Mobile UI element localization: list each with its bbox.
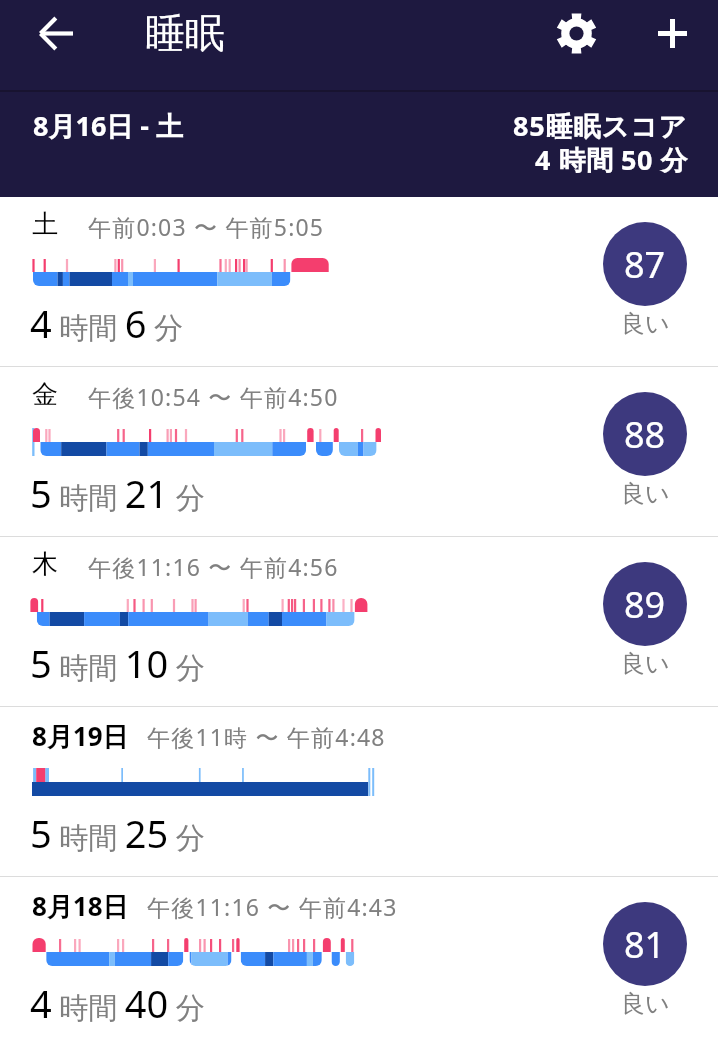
button[interactable]: Back: [24, 1, 88, 65]
staticText: 午後11:16 〜 午前4:43: [147, 891, 398, 922]
staticText: 5 時間 21 分: [30, 467, 205, 519]
staticText: 良い: [621, 479, 670, 509]
staticText: 87: [624, 240, 666, 289]
staticText: 午後11:16 〜 午前4:56: [88, 551, 339, 582]
staticText: 良い: [621, 309, 670, 339]
staticText: 午前0:03 〜 午前5:05: [88, 211, 325, 242]
staticText: 8月18日: [32, 888, 129, 924]
staticText: 4 時間 6 分: [30, 297, 184, 349]
staticText: 良い: [621, 989, 670, 1019]
staticText: 睡眠: [145, 8, 225, 58]
button[interactable]: 土: [0, 197, 718, 366]
staticText: 木: [32, 548, 58, 581]
staticText: 土: [32, 208, 58, 241]
staticText: 89: [624, 580, 666, 629]
staticText: 4 時間 50 分: [535, 141, 688, 178]
button[interactable]: Add: [640, 1, 704, 65]
staticText: 午後10:54 〜 午前4:50: [88, 381, 339, 412]
staticText: 5 時間 25 分: [30, 807, 205, 859]
button[interactable]: 木: [0, 537, 718, 706]
staticText: 5 時間 10 分: [30, 637, 205, 689]
staticText: 4 時間 40 分: [30, 977, 205, 1029]
button[interactable]: 金: [0, 367, 718, 536]
button[interactable]: 8月18日: [0, 877, 718, 1046]
staticText: 良い: [621, 649, 670, 679]
staticText: 金: [32, 378, 58, 411]
button[interactable]: 8月19日: [0, 707, 718, 876]
button[interactable]: Settings: [544, 1, 608, 65]
staticText: 81: [624, 920, 666, 969]
staticText: 8月19日: [32, 718, 129, 754]
staticText: 8月16日 - 土: [33, 107, 184, 144]
staticText: 午後11時 〜 午前4:48: [147, 721, 386, 752]
staticText: 88: [624, 410, 666, 459]
staticText: 85睡眠スコア: [513, 107, 688, 144]
